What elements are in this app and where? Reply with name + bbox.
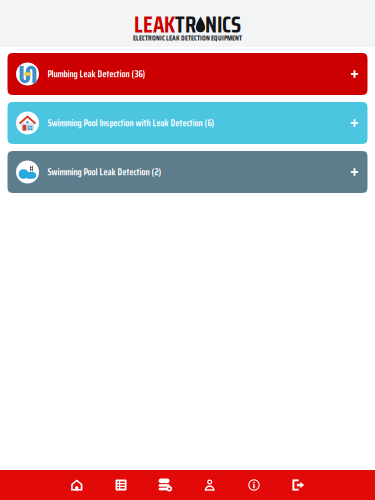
button[interactable]: Plumbing Leak Detection (36) xyxy=(7,53,367,95)
button[interactable]: Catalog xyxy=(99,470,143,500)
button[interactable]: Home xyxy=(55,470,99,500)
staticText: ELECTRONIC LEAK DETECTION EQUIPMENT xyxy=(133,32,242,44)
button[interactable]: Log out xyxy=(276,470,320,500)
staticText: Swimming Pool Leak Detection (2) xyxy=(47,165,161,179)
staticText: NICS xyxy=(205,7,241,42)
button[interactable]: Swimming Pool Inspection with Leak Detec… xyxy=(7,102,367,144)
staticText: LEAK xyxy=(134,7,175,42)
staticText: Swimming Pool Inspection with Leak Detec… xyxy=(47,116,214,130)
button[interactable]: Info xyxy=(232,470,276,500)
button[interactable]: Equipment data xyxy=(143,470,187,500)
staticText: TR xyxy=(175,7,196,42)
staticText: Plumbing Leak Detection (36) xyxy=(47,67,145,81)
button[interactable]: Swimming Pool Leak Detection (2) xyxy=(7,151,367,193)
button[interactable]: Account xyxy=(187,470,232,500)
